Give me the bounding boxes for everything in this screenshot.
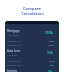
staticText: Auto Loan (7, 49, 21, 53)
staticText: Monthly pay (7, 43, 48, 46)
staticText: 4.5% (49, 39, 55, 42)
staticText: Mortgage (7, 29, 20, 33)
staticText: 620 (50, 63, 55, 66)
staticText: 250k (45, 30, 53, 35)
staticText: 32k (47, 50, 53, 55)
button[interactable]: Mortgage (7, 29, 57, 46)
staticText: Interest rate (7, 59, 49, 62)
staticText: Interest rate (7, 39, 49, 42)
staticText: Calculators (21, 11, 44, 16)
staticText: 5k (48, 69, 53, 72)
staticText: 1,267 (48, 43, 55, 46)
staticText: Savings (7, 69, 17, 72)
button[interactable]: Savings (7, 69, 57, 72)
staticText: 30 yr fixed (7, 33, 19, 36)
staticText: 6.1% (49, 59, 55, 62)
button[interactable]: Auto Loan (7, 49, 57, 66)
staticText: Compare (23, 6, 41, 11)
staticText: Monthly pay (7, 63, 50, 66)
staticText: 5 yr fixed (7, 53, 18, 56)
